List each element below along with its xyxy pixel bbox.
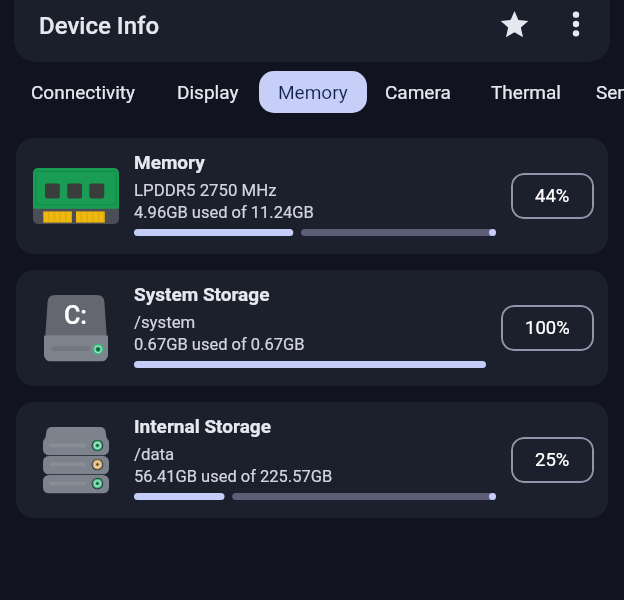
button[interactable]: 25% bbox=[511, 437, 594, 483]
button[interactable]: Internal Storage bbox=[16, 402, 608, 518]
staticText: /system bbox=[134, 312, 196, 332]
button[interactable]: Thermal bbox=[491, 81, 561, 103]
button[interactable]: Memory bbox=[259, 71, 367, 113]
staticText: 0.67GB used of 0.67GB bbox=[134, 335, 305, 354]
button[interactable]: Display bbox=[177, 81, 239, 103]
staticText: Sensors bbox=[596, 81, 624, 103]
staticText: 44% bbox=[535, 185, 570, 207]
staticText: Device Info bbox=[39, 12, 160, 40]
staticText: Memory bbox=[134, 151, 205, 173]
staticText: Camera bbox=[385, 81, 451, 103]
staticText: Thermal bbox=[491, 81, 561, 103]
button[interactable]: Connectivity bbox=[31, 81, 136, 103]
staticText: 56.41GB used of 225.57GB bbox=[134, 467, 333, 486]
staticText: /data bbox=[134, 444, 175, 464]
staticText: 4.96GB used of 11.24GB bbox=[134, 203, 314, 222]
staticText: System Storage bbox=[134, 283, 270, 305]
button[interactable]: 100% bbox=[501, 305, 594, 351]
staticText: Connectivity bbox=[31, 81, 136, 103]
staticText: 25% bbox=[535, 449, 570, 471]
button[interactable]: Favorite bbox=[490, 0, 538, 48]
staticText: 100% bbox=[525, 317, 570, 339]
staticText: Internal Storage bbox=[134, 415, 271, 437]
button[interactable]: More options bbox=[552, 0, 600, 48]
button[interactable]: Camera bbox=[385, 81, 451, 103]
button[interactable]: C: bbox=[16, 270, 608, 386]
button[interactable]: Sensors bbox=[596, 81, 624, 103]
button[interactable]: 44% bbox=[511, 173, 594, 219]
staticText: Memory bbox=[278, 81, 348, 103]
button[interactable]: Memory bbox=[16, 138, 608, 254]
staticText: LPDDR5 2750 MHz bbox=[134, 180, 277, 200]
staticText: C: bbox=[64, 301, 87, 330]
staticText: Display bbox=[177, 81, 239, 103]
